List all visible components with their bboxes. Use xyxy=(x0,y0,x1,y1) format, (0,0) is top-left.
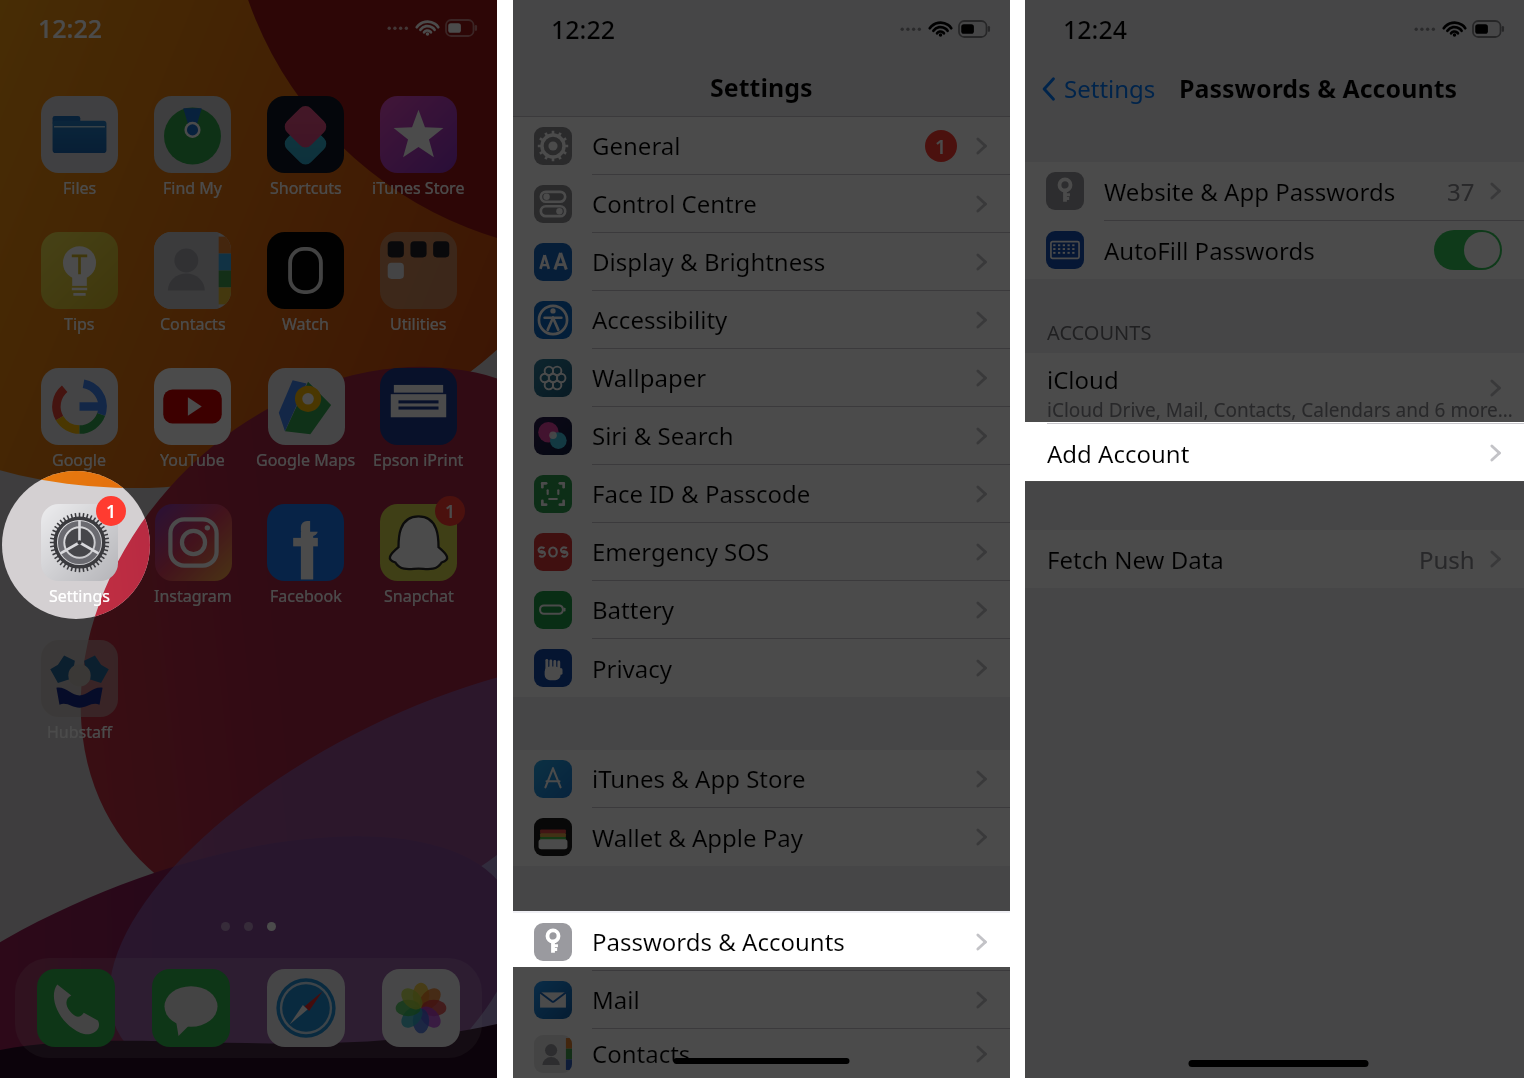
button[interactable]: Google Maps xyxy=(256,368,356,471)
button[interactable]: Snapchat xyxy=(380,504,457,607)
staticText: Contacts xyxy=(160,313,226,335)
button[interactable]: Snapchat xyxy=(380,504,457,607)
button[interactable]: Photos xyxy=(382,969,460,1047)
button[interactable]: Passwords & Accounts xyxy=(513,913,1010,970)
button[interactable]: AutoFill Passwords toggle xyxy=(1434,230,1502,270)
staticText: Wallet & Apple Pay xyxy=(592,821,803,854)
staticText: Tips xyxy=(64,313,95,335)
button[interactable]: Website & App Passwords xyxy=(1025,162,1524,220)
button[interactable]: iTunes Store xyxy=(372,96,465,199)
staticText: Passwords & Accounts xyxy=(1179,71,1458,105)
button[interactable]: Settings xyxy=(41,504,118,607)
button[interactable]: Phone xyxy=(37,969,115,1047)
button[interactable]: Facebook xyxy=(267,504,344,607)
button[interactable]: iTunes Store xyxy=(372,96,465,199)
staticText: Display & Brightness xyxy=(592,245,826,278)
button[interactable]: Utilities xyxy=(380,232,457,335)
staticText: Utilities xyxy=(390,313,447,335)
staticText: Emergency SOS xyxy=(592,535,770,568)
button[interactable]: Photos xyxy=(382,969,460,1047)
staticText: Wallpaper xyxy=(592,361,707,394)
button[interactable]: Google xyxy=(41,368,118,471)
button[interactable]: Contacts xyxy=(513,1029,1010,1078)
staticText: Fetch New Data xyxy=(1047,543,1224,576)
staticText: Shortcuts xyxy=(270,177,342,199)
button[interactable]: Shortcuts xyxy=(267,96,344,199)
button[interactable]: Epson iPrint xyxy=(373,368,464,471)
button[interactable]: Google Maps xyxy=(256,368,356,471)
button[interactable]: Add Account xyxy=(1025,424,1524,482)
staticText: Watch xyxy=(282,313,329,335)
button[interactable]: Mail xyxy=(513,971,1010,1028)
staticText: Files xyxy=(63,177,97,199)
button[interactable]: Settings xyxy=(1041,72,1162,105)
button[interactable]: General xyxy=(513,117,1010,174)
staticText: Facebook xyxy=(270,585,342,607)
staticText: Settings xyxy=(49,585,110,607)
staticText: Website & App Passwords xyxy=(1104,175,1396,208)
button[interactable]: Contacts xyxy=(154,232,231,335)
button[interactable]: Settings xyxy=(41,504,118,607)
button[interactable]: Shortcuts xyxy=(267,96,344,199)
staticText: Settings xyxy=(49,585,110,607)
staticText: 1 xyxy=(106,499,117,524)
button[interactable]: Hubstaff xyxy=(41,640,118,743)
button[interactable]: Fetch New Data xyxy=(1025,530,1524,588)
button[interactable]: Emergency SOS xyxy=(513,523,1010,580)
button[interactable]: Accessibility xyxy=(513,291,1010,348)
staticText: Instagram xyxy=(154,585,232,607)
button[interactable]: Watch xyxy=(267,232,344,335)
button[interactable]: Messages xyxy=(152,969,230,1047)
button[interactable]: Files xyxy=(41,96,118,199)
staticText: Push xyxy=(1419,543,1475,576)
staticText: 12:22 xyxy=(38,11,103,45)
staticText: 1 xyxy=(445,499,456,524)
button[interactable]: Hubstaff xyxy=(41,640,118,743)
button[interactable]: Siri & Search xyxy=(513,407,1010,464)
button[interactable]: Contacts xyxy=(154,232,231,335)
button[interactable]: Instagram xyxy=(154,504,232,607)
button[interactable]: AutoFill Passwords xyxy=(1025,221,1524,279)
button[interactable]: Tips xyxy=(41,232,118,335)
button[interactable]: Face ID & Passcode xyxy=(513,465,1010,522)
button[interactable]: iCloud xyxy=(1025,353,1524,423)
button[interactable]: Battery xyxy=(513,581,1010,638)
staticText: Google Maps xyxy=(256,449,356,471)
button[interactable]: Wallet & Apple Pay xyxy=(513,808,1010,866)
button[interactable]: Facebook xyxy=(267,504,344,607)
button[interactable]: Find My xyxy=(154,96,231,199)
button[interactable]: Display & Brightness xyxy=(513,233,1010,290)
staticText: iCloud xyxy=(1047,363,1119,396)
button[interactable]: iTunes & App Store xyxy=(513,750,1010,807)
button[interactable]: Epson iPrint xyxy=(373,368,464,471)
staticText: Contacts xyxy=(592,1037,691,1070)
button[interactable]: Tips xyxy=(41,232,118,335)
staticText: Epson iPrint xyxy=(373,449,464,471)
button[interactable]: Find My xyxy=(154,96,231,199)
button[interactable]: Instagram xyxy=(154,504,232,607)
button[interactable]: Privacy xyxy=(513,639,1010,697)
button[interactable]: Files xyxy=(41,96,118,199)
staticText: Hubstaff xyxy=(47,721,113,743)
staticText: Instagram xyxy=(154,585,232,607)
button[interactable]: YouTube xyxy=(154,368,231,471)
staticText: 37 xyxy=(1447,175,1475,208)
staticText: 1 xyxy=(445,499,456,524)
button[interactable]: Utilities xyxy=(380,232,457,335)
button[interactable]: Wallpaper xyxy=(513,349,1010,406)
staticText: iTunes & App Store xyxy=(592,762,806,795)
staticText: Epson iPrint xyxy=(373,449,464,471)
staticText: 1 xyxy=(935,133,947,160)
button[interactable]: Google xyxy=(41,368,118,471)
button[interactable]: Safari xyxy=(267,969,345,1047)
button[interactable]: Phone xyxy=(37,969,115,1047)
button[interactable]: YouTube xyxy=(154,368,231,471)
button[interactable]: Messages xyxy=(152,969,230,1047)
button[interactable]: Safari xyxy=(267,969,345,1047)
button[interactable]: Watch xyxy=(267,232,344,335)
staticText: ACCOUNTS xyxy=(1047,319,1152,346)
staticText: Find My xyxy=(163,177,222,199)
staticText: Files xyxy=(63,177,97,199)
button[interactable]: Control Centre xyxy=(513,175,1010,232)
staticText: 12:22 xyxy=(551,12,616,46)
